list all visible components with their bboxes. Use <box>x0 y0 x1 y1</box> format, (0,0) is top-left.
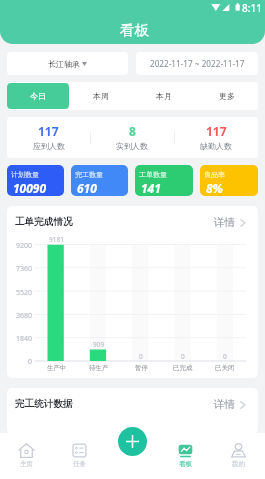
staticText: 良品率 <box>204 170 225 179</box>
staticText: 长江轴承 <box>48 59 80 69</box>
staticText: 缺勤人数 <box>200 141 232 151</box>
staticText: 0 <box>139 352 143 361</box>
staticText: 8:11 <box>242 1 262 15</box>
staticText: 今日 <box>30 91 46 101</box>
staticText: 待生产 <box>89 364 109 372</box>
staticText: 详情 <box>214 216 235 229</box>
button[interactable]: Add <box>118 427 147 456</box>
button[interactable]: 良品率 <box>200 165 258 196</box>
staticText: 主页 <box>20 460 33 468</box>
button[interactable]: 8 <box>90 117 174 158</box>
staticText: 本月 <box>156 91 172 101</box>
staticText: 3680 <box>16 311 33 321</box>
staticText: 9200 <box>16 241 33 251</box>
button[interactable]: 我的 <box>212 433 265 479</box>
staticText: 工单完成情况 <box>15 216 73 228</box>
staticText: 7360 <box>16 264 33 274</box>
staticText: 0 <box>181 352 185 361</box>
staticText: 610 <box>77 180 97 196</box>
staticText: 生产中 <box>47 364 67 372</box>
staticText: 完工统计数据 <box>15 398 73 410</box>
staticText: 0 <box>223 352 227 361</box>
button[interactable]: 看板 <box>159 433 212 479</box>
staticText: 任务 <box>73 460 86 468</box>
staticText: 看板 <box>120 21 149 39</box>
button[interactable]: 主页 <box>0 433 53 479</box>
staticText: 1840 <box>16 334 33 344</box>
staticText: 本周 <box>93 91 109 101</box>
staticText: 8% <box>206 180 223 196</box>
staticText: 117 <box>38 123 59 139</box>
staticText: 详情 <box>214 398 235 411</box>
staticText: 暂停 <box>135 364 148 372</box>
staticText: 2022-11-17 ~ 2022-11-17 <box>150 58 245 69</box>
button[interactable]: 本周 <box>69 83 132 109</box>
staticText: 8 <box>129 123 136 139</box>
staticText: 更多 <box>219 91 235 101</box>
staticText: 117 <box>206 123 227 139</box>
button[interactable]: 任务 <box>53 433 106 479</box>
button[interactable]: 长江轴承 <box>7 52 128 75</box>
staticText: 909 <box>93 340 105 349</box>
button[interactable]: 工单数量 <box>135 165 193 196</box>
button[interactable]: 计划数量 <box>7 165 64 196</box>
staticText: 已完成 <box>173 364 193 372</box>
button[interactable]: 详情 <box>214 398 247 411</box>
staticText: 9181 <box>49 235 64 244</box>
staticText: 计划数量 <box>11 170 39 179</box>
button[interactable]: 更多 <box>195 83 258 109</box>
staticText: 141 <box>141 180 161 196</box>
button[interactable]: 完工数量 <box>71 165 128 196</box>
staticText: 看板 <box>179 460 192 468</box>
staticText: 0 <box>28 357 33 367</box>
staticText: 完工数量 <box>75 170 103 179</box>
button[interactable]: 2022-11-17 ~ 2022-11-17 <box>136 52 258 75</box>
button[interactable]: 117 <box>174 117 258 158</box>
staticText: 应到人数 <box>33 141 65 151</box>
staticText: 10090 <box>13 180 47 196</box>
staticText: 已关闭 <box>215 364 235 372</box>
button[interactable]: 今日 <box>7 83 69 109</box>
staticText: 5520 <box>16 288 33 298</box>
staticText: 工单数量 <box>139 170 167 179</box>
button[interactable]: 详情 <box>214 216 247 229</box>
staticText: 我的 <box>232 460 245 468</box>
button[interactable]: 本月 <box>132 83 195 109</box>
staticText: 实到人数 <box>116 141 148 151</box>
button[interactable]: 117 <box>7 117 90 158</box>
